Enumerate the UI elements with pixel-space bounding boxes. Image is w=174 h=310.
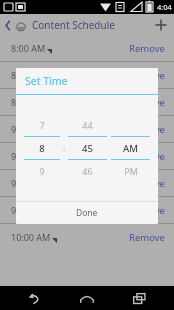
button[interactable]: 9 (24, 160, 60, 182)
button[interactable]: 8:00 AM (0, 35, 174, 61)
staticText: 9:45 AM (11, 204, 46, 216)
button[interactable]: Home (70, 286, 104, 310)
staticText: Remove (129, 231, 165, 244)
staticText: PM (124, 165, 138, 177)
button[interactable]: Add (151, 15, 171, 35)
staticText: 4:04 (157, 2, 172, 12)
staticText: Done (76, 207, 98, 219)
staticText: 8:00 AM (11, 42, 46, 54)
staticText: 10:00 AM (11, 231, 51, 243)
button[interactable]: 9:45 AM (0, 197, 174, 223)
button[interactable]: Remove (129, 177, 165, 190)
staticText: 45 (82, 142, 93, 155)
button[interactable]: 7 (24, 114, 60, 136)
staticText: Remove (129, 150, 165, 163)
button[interactable]: 10:00 AM (0, 224, 174, 250)
staticText: Remove (129, 69, 165, 82)
button[interactable]: Remove (129, 69, 165, 82)
button[interactable]: 46 (68, 160, 107, 182)
button[interactable]: 8:30 AM (0, 62, 174, 88)
button[interactable]: AM (111, 137, 150, 159)
button[interactable]: Recent apps (122, 286, 156, 310)
staticText: 7 (39, 119, 45, 131)
button[interactable]: 44 (68, 114, 107, 136)
button[interactable]: Remove (129, 150, 165, 163)
staticText: 8:45 AM (11, 96, 46, 108)
button[interactable]: Remove (129, 231, 165, 244)
staticText: 8:30 AM (11, 69, 46, 81)
button[interactable]: Remove (129, 42, 165, 55)
staticText: Remove (129, 177, 165, 190)
button[interactable]: 9:00 AM (0, 116, 174, 142)
staticText: AM (123, 142, 138, 155)
staticText: 9:30 AM (11, 177, 46, 189)
button[interactable]: 9:30 AM (0, 170, 174, 196)
staticText: Content Schedule (32, 18, 115, 32)
staticText: : (63, 143, 66, 154)
staticText: Remove (129, 204, 165, 217)
button[interactable]: Remove (129, 96, 165, 109)
staticText: 9 (39, 165, 45, 177)
staticText: Remove (129, 42, 165, 55)
button[interactable]: Back (18, 286, 52, 310)
staticText: 44 (82, 119, 93, 131)
button[interactable]: 8:45 AM (0, 89, 174, 115)
staticText: 9:15 AM (11, 150, 46, 162)
staticText: Remove (129, 96, 165, 109)
button[interactable]: Remove (129, 204, 165, 217)
staticText: 9:00 AM (11, 123, 46, 135)
staticText: 46 (82, 165, 93, 177)
button[interactable]: 9:15 AM (0, 143, 174, 169)
button[interactable]: Remove (129, 123, 165, 136)
button[interactable]: Back (3, 16, 13, 34)
staticText: Set Time (25, 74, 68, 88)
button[interactable]: 8 (24, 137, 60, 159)
staticText: 8 (39, 142, 45, 155)
staticText: Remove (129, 123, 165, 136)
button[interactable]: 45 (68, 137, 107, 159)
button[interactable]: Done (16, 202, 158, 224)
button[interactable]: PM (111, 160, 150, 182)
